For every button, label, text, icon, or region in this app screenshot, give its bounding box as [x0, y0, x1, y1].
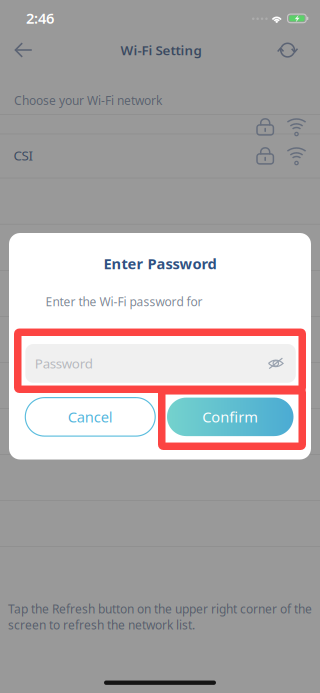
staticText: Enter the Wi-Fi password for — [46, 294, 203, 309]
button[interactable]: Password field — [25, 344, 296, 383]
staticText: Choose your Wi-Fi network — [14, 92, 162, 108]
staticText: Enter Password — [103, 254, 216, 273]
button[interactable]: Refresh network list — [265, 30, 309, 70]
staticText: Wi-Fi Setting — [120, 41, 201, 59]
button[interactable]: Back — [1, 30, 46, 70]
staticText: CSI — [13, 146, 33, 164]
button[interactable]: Confirm — [167, 398, 293, 436]
staticText: 2:46 — [26, 8, 54, 28]
staticText: Password — [35, 354, 93, 372]
button[interactable]: Cancel — [25, 398, 155, 436]
staticText: Confirm — [202, 407, 258, 427]
staticText: Cancel — [68, 407, 113, 427]
staticText: Tap the Refresh button on the upper righ… — [8, 601, 312, 633]
